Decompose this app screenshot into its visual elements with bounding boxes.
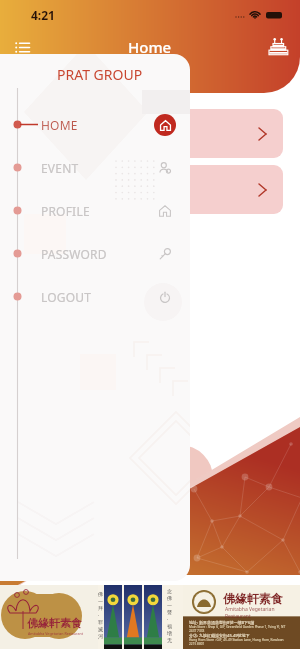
staticText: EVENT: [41, 160, 79, 176]
staticText: Main Store : Shop 6, G/F, Greenfield Gar…: [189, 625, 286, 629]
button[interactable]: [16, 165, 283, 214]
staticText: Home: [128, 37, 172, 57]
staticText: PRAT GROUP: [57, 65, 143, 84]
button[interactable]: PASSWORD: [0, 232, 190, 275]
button[interactable]: [16, 109, 283, 158]
button[interactable]: PROFILE: [0, 189, 190, 232]
staticText: PASSWORD: [41, 246, 107, 262]
button[interactable]: Events: [264, 33, 292, 61]
staticText: 2437 7333: [189, 629, 205, 633]
staticText: 念 佛 一 聲 · 福 增 无: [167, 588, 172, 644]
staticText: 2215 8801: [189, 642, 205, 646]
staticText: Hung Hom Store : G/F, 45-49 Statian Lane…: [189, 638, 284, 642]
button[interactable]: HOME: [0, 103, 190, 146]
staticText: 佛緣軒素食: [27, 616, 82, 630]
staticText: 4:21: [31, 7, 55, 23]
staticText: PROFILE: [41, 203, 90, 219]
staticText: 分店: 九龍紅磡崇安街45-49號地下: [189, 633, 250, 638]
staticText: Amitabha Vegetarian Restaurant: [28, 631, 83, 636]
staticText: 佛緣軒素食: [223, 591, 283, 606]
staticText: LOGOUT: [41, 289, 92, 305]
staticText: HOME: [41, 117, 78, 133]
staticText: Amitabha Vegetarian Restaurant: [225, 606, 300, 620]
staticText: 地址: 新界葵涌葵豐街8號一樓B下6舖: [189, 620, 255, 625]
button[interactable]: Open navigation menu: [8, 33, 36, 61]
button[interactable]: EVENT: [0, 146, 190, 189]
button[interactable]: LOGOUT: [0, 275, 190, 318]
staticText: 佛 一 拜 · 罪 滅 河: [98, 591, 103, 640]
